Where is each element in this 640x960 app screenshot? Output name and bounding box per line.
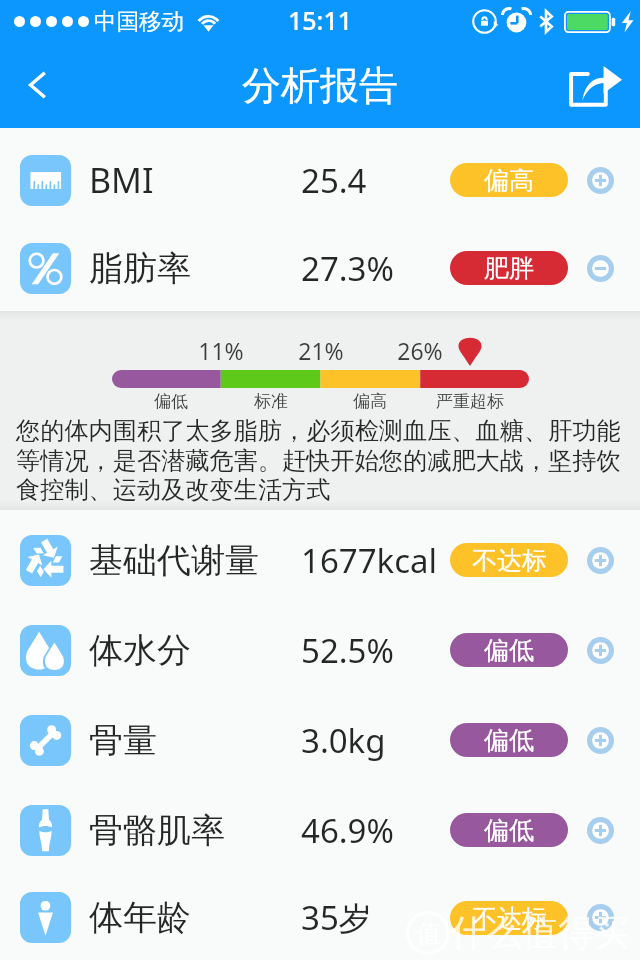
- staticText: 偏低: [484, 725, 534, 756]
- staticText: 15:11: [288, 3, 353, 37]
- staticText: BMI: [89, 157, 154, 203]
- staticText: 偏低: [484, 635, 534, 666]
- other: 展开: [587, 637, 614, 664]
- other: 收起: [587, 255, 614, 282]
- button[interactable]: 体水分: [0, 605, 640, 695]
- staticText: 11%: [198, 335, 244, 366]
- staticText: 35岁: [301, 895, 372, 940]
- staticText: 偏高: [353, 391, 387, 412]
- staticText: 中国移动: [94, 7, 184, 35]
- staticText: 肥胖: [484, 253, 534, 284]
- staticText: 偏高: [484, 165, 534, 196]
- other: 展开: [587, 547, 614, 574]
- staticText: 基础代谢量: [89, 539, 259, 582]
- staticText: 体水分: [89, 629, 191, 672]
- button[interactable]: BMI: [0, 135, 640, 225]
- button[interactable]: 体年龄: [0, 875, 640, 960]
- button[interactable]: 脂肪率: [0, 225, 640, 311]
- staticText: 不达标: [472, 545, 547, 576]
- button[interactable]: 返回: [0, 42, 76, 128]
- other: 展开: [587, 904, 614, 931]
- staticText: 您的体内围积了太多脂肪，必须检测血压、血糖、肝功能等情况，是否潜藏危害。赶快开始…: [16, 416, 631, 505]
- staticText: 什么值得买: [450, 910, 630, 955]
- staticText: 不达标: [472, 903, 547, 934]
- staticText: 27.3%: [301, 246, 394, 291]
- staticText: 46.9%: [301, 808, 394, 853]
- other: 展开: [587, 817, 614, 844]
- staticText: 25.4: [301, 158, 367, 203]
- staticText: 52.5%: [301, 628, 394, 673]
- staticText: 3.0kg: [301, 718, 386, 763]
- staticText: 分析报告: [242, 61, 398, 110]
- button[interactable]: 骨量: [0, 695, 640, 785]
- staticText: 21%: [298, 335, 344, 366]
- staticText: 体年龄: [89, 896, 191, 939]
- other: 展开: [587, 167, 614, 194]
- staticText: 严重超标: [436, 391, 504, 412]
- staticText: 骨量: [89, 719, 157, 762]
- button[interactable]: 分享: [556, 42, 640, 128]
- staticText: 26%: [397, 335, 443, 366]
- staticText: 1677kcal: [301, 538, 437, 583]
- button[interactable]: 骨骼肌率: [0, 785, 640, 875]
- staticText: 偏低: [484, 815, 534, 846]
- staticText: 骨骼肌率: [89, 809, 225, 852]
- button[interactable]: 基础代谢量: [0, 515, 640, 605]
- staticText: 标准: [254, 391, 288, 412]
- other: 展开: [587, 727, 614, 754]
- staticText: 偏低: [154, 391, 188, 412]
- staticText: 脂肪率: [89, 247, 191, 290]
